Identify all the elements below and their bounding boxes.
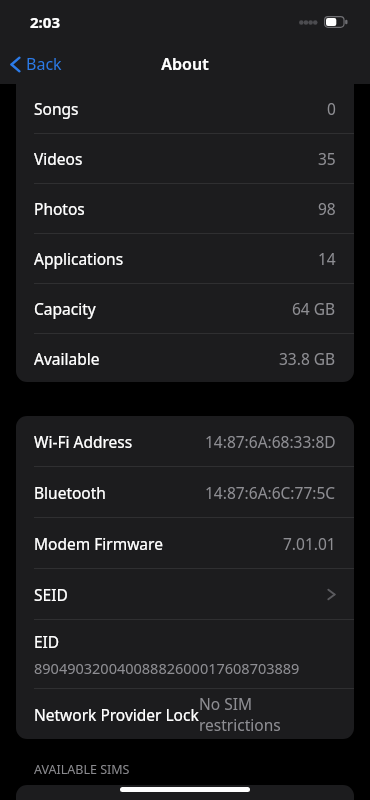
button[interactable]: Applications [16,233,354,283]
staticText: Wi-Fi Address [34,431,133,452]
staticText: Videos [34,148,83,169]
staticText: SEID [34,584,68,605]
button[interactable]: Capacity [16,283,354,333]
staticText: 89049032004008882600017608703889 [34,658,300,678]
staticText: 14:87:6A:6C:77:5C [205,482,336,503]
staticText: Modem Firmware [34,533,163,554]
button[interactable]: EID [16,619,354,688]
staticText: 14 [318,248,336,269]
staticText: Songs [34,98,79,119]
staticText: Applications [34,248,124,269]
staticText: Bluetooth [34,482,106,503]
staticText: 33.8 GB [279,348,336,369]
button[interactable]: Photos [16,183,354,233]
staticText: About [161,53,209,75]
staticText: Photos [34,198,85,219]
button[interactable]: Bluetooth [16,466,354,517]
staticText: Capacity [34,298,96,319]
staticText: 14:87:6A:68:33:8D [205,431,336,452]
staticText: 2:03 [30,12,60,32]
button[interactable]: Videos [16,133,354,183]
staticText: Available [34,348,100,369]
staticText: No SIM restrictions [199,693,336,735]
staticText: Network Provider Lock [34,704,199,725]
button[interactable]: Wi-Fi Address [16,416,354,466]
button[interactable]: Available [16,333,354,382]
button[interactable]: SEID [16,568,354,619]
staticText: AVAILABLE SIMS [34,761,130,778]
button[interactable]: Modem Firmware [16,517,354,568]
staticText: 7.01.01 [283,533,336,554]
button[interactable]: Network Provider Lock [16,688,354,739]
button[interactable]: Back [0,53,72,75]
button[interactable]: Songs [16,84,354,133]
staticText: EID [34,631,60,652]
staticText: 98 [318,198,336,219]
staticText: 35 [318,148,336,169]
staticText: 64 GB [292,298,336,319]
staticText: 0 [327,98,336,119]
staticText: Back [26,53,62,75]
